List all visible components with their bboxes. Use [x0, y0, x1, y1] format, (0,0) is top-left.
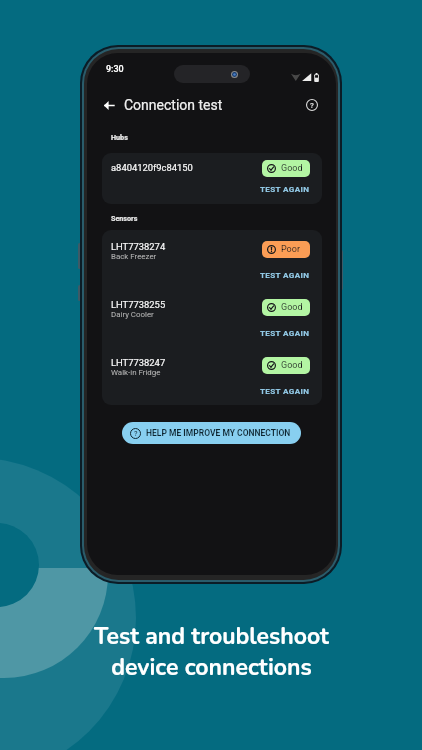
button[interactable]: TEST AGAIN: [258, 327, 312, 338]
button[interactable]: a8404120f9c84150: [102, 153, 322, 204]
staticText: ?: [310, 101, 314, 110]
staticText: LHT7738247: [111, 357, 166, 368]
button[interactable]: TEST AGAIN: [258, 385, 312, 396]
staticText: Poor: [281, 244, 300, 255]
button[interactable]: Help: [301, 94, 323, 116]
button[interactable]: Good: [262, 160, 310, 177]
staticText: Hubs: [111, 133, 128, 141]
button[interactable]: LHT7738274: [102, 230, 322, 288]
staticText: Test and troubleshoot device connections: [94, 621, 329, 683]
button[interactable]: LHT7738255: [102, 288, 322, 346]
button[interactable]: ?: [122, 422, 301, 444]
staticText: Dairy Cooler: [111, 310, 154, 319]
staticText: TEST AGAIN: [260, 184, 310, 193]
staticText: TEST AGAIN: [260, 386, 310, 395]
staticText: LHT7738255: [111, 299, 166, 310]
staticText: TEST AGAIN: [260, 328, 310, 337]
staticText: TEST AGAIN: [260, 270, 310, 279]
staticText: Back Freezer: [111, 252, 157, 261]
button[interactable]: LHT7738247: [102, 346, 322, 404]
button[interactable]: Back: [97, 93, 121, 117]
staticText: LHT7738274: [111, 241, 166, 252]
staticText: Walk-in Fridge: [111, 368, 161, 377]
button[interactable]: Poor: [262, 241, 310, 258]
staticText: 9:30: [106, 64, 124, 75]
staticText: a8404120f9c84150: [111, 162, 193, 173]
staticText: ?: [134, 429, 138, 438]
staticText: Good: [281, 302, 303, 313]
button[interactable]: TEST AGAIN: [258, 269, 312, 280]
staticText: Good: [281, 360, 303, 371]
staticText: Good: [281, 163, 303, 174]
staticText: Connection test: [124, 97, 223, 113]
button[interactable]: TEST AGAIN: [258, 183, 312, 194]
button[interactable]: Good: [262, 299, 310, 316]
button[interactable]: Good: [262, 357, 310, 374]
staticText: HELP ME IMPROVE MY CONNECTION: [146, 428, 291, 438]
staticText: Sensors: [111, 214, 138, 222]
